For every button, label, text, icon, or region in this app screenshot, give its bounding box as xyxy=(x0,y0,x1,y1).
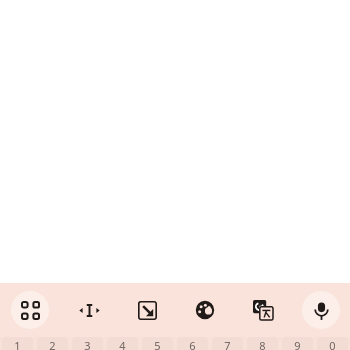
button[interactable]: Open features menu xyxy=(0,283,59,337)
staticText: 4 xyxy=(119,338,126,350)
staticText: 9 xyxy=(294,338,301,350)
button[interactable]: Text editing xyxy=(59,283,118,337)
button[interactable]: 9 xyxy=(282,337,313,350)
button[interactable]: 2 xyxy=(37,337,68,350)
button[interactable]: Themes xyxy=(176,283,234,337)
staticText: 8 xyxy=(259,338,266,350)
button[interactable]: 8 xyxy=(247,337,278,350)
staticText: 1 xyxy=(14,338,21,350)
button[interactable]: 6 xyxy=(177,337,208,350)
button[interactable]: Translate xyxy=(234,283,292,337)
button[interactable]: 1 xyxy=(2,337,33,350)
button[interactable]: 5 xyxy=(142,337,173,350)
staticText: 6 xyxy=(189,338,196,350)
button[interactable]: 7 xyxy=(212,337,243,350)
staticText: 2 xyxy=(49,338,56,350)
staticText: 7 xyxy=(224,338,231,350)
button[interactable]: Select and handwrite xyxy=(118,283,176,337)
button[interactable]: 4 xyxy=(107,337,138,350)
button[interactable]: Voice input xyxy=(292,283,350,337)
staticText: 5 xyxy=(154,338,161,350)
button[interactable]: 3 xyxy=(72,337,103,350)
staticText: 3 xyxy=(84,338,91,350)
staticText: 0 xyxy=(329,338,336,350)
button[interactable]: 0 xyxy=(317,337,348,350)
